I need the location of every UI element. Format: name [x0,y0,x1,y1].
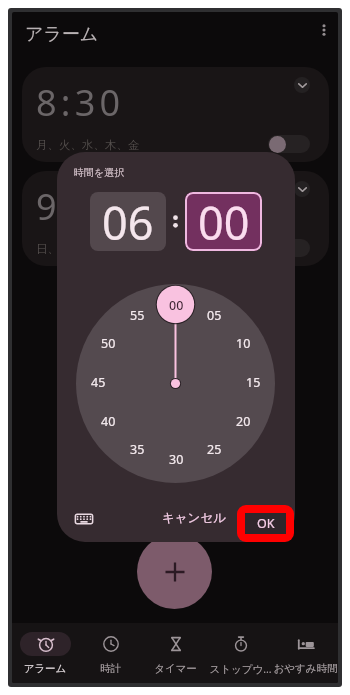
staticText: 8:30 [36,78,125,127]
staticText: 日、土 [36,242,71,256]
staticText: 35 [130,441,145,458]
staticText: 9:00 [36,182,125,231]
staticText: OK [257,515,275,532]
button[interactable]: Switch to text input [74,509,94,529]
button[interactable]: Enable alarm [268,239,310,257]
button[interactable]: Enable alarm [268,135,310,153]
staticText: 月、火、水、木、金 [36,138,140,152]
button[interactable]: おやすみ時間 [273,623,338,675]
button[interactable]: Add alarm [137,534,212,609]
staticText: 時計 [78,662,143,675]
staticText: 45 [91,374,106,391]
staticText: キャンセル [162,510,226,526]
staticText: 時間を選択 [74,166,125,179]
button[interactable]: Expand alarm [294,181,310,197]
staticText: 20 [236,413,251,430]
staticText: 30 [169,451,184,468]
button[interactable]: More options [312,18,336,42]
button[interactable]: キャンセル [161,506,226,530]
button[interactable]: 時計 [78,623,143,675]
button[interactable]: アラーム [12,623,78,675]
staticText: 25 [207,441,222,458]
staticText: 00 [169,297,184,314]
staticText: 15 [246,374,261,391]
button[interactable]: Expand alarm [294,77,310,93]
staticText: タイマー [143,662,208,675]
button[interactable]: 9:00 [22,171,329,266]
staticText: アラーム [25,23,99,46]
button[interactable]: ストップウ… [208,623,273,676]
staticText: 05 [207,307,222,324]
staticText: 50 [101,335,116,352]
button[interactable]: OK [245,513,286,534]
staticText: 40 [101,413,116,430]
staticText: おやすみ時間 [273,662,338,675]
staticText: 10 [236,335,251,352]
button[interactable]: 8:30 [22,67,329,162]
staticText: 55 [130,307,145,324]
button[interactable]: アラーム [12,12,338,62]
staticText: アラーム [12,662,78,675]
staticText: 06 [102,192,154,251]
staticText: 00 [198,192,250,251]
button[interactable]: 00 [185,192,262,251]
button[interactable]: タイマー [143,623,208,675]
button[interactable]: 06 [90,192,166,251]
staticText: ストップウ… [208,662,273,676]
